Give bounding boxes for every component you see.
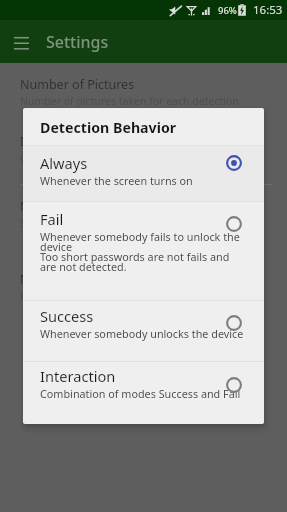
staticText: Whenever the screen turns on [40, 173, 193, 188]
button[interactable]: Success [23, 301, 264, 361]
staticText: Interaction [40, 366, 116, 386]
button[interactable]: Open navigation drawer [8, 29, 34, 55]
staticText: Whenever somebody fails to unlock the de… [40, 229, 240, 274]
staticText: Send pictures to this address. [20, 216, 166, 230]
button[interactable]: Always [23, 146, 264, 201]
staticText: Detection Behavior [40, 118, 177, 137]
staticText: Success [40, 306, 94, 326]
staticText: Whenever somebody unlocks the device [40, 326, 244, 341]
staticText: Choose when a picture is taken. [20, 151, 177, 165]
staticText: 16:53 [253, 2, 283, 18]
button[interactable]: Interaction [23, 362, 264, 424]
staticText: Fail [40, 209, 64, 229]
staticText: Mail Address [20, 198, 96, 215]
staticText: Always [40, 153, 88, 173]
button[interactable]: Fail [23, 202, 264, 300]
staticText: Number of Pictures [20, 76, 135, 93]
staticText: Number of pictures taken for each detect… [20, 94, 242, 108]
staticText: Mail Password [20, 271, 105, 288]
staticText: Detection Behavior [20, 133, 133, 150]
staticText: Combination of modes Success and Fail [40, 386, 241, 401]
staticText: 96% [218, 4, 237, 17]
staticText: Settings [46, 31, 109, 53]
staticText: Password of the mail address. [20, 289, 168, 303]
